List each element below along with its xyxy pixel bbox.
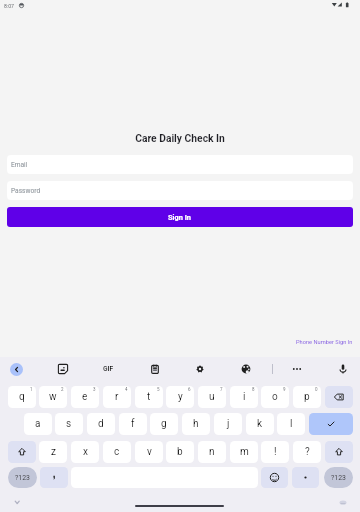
staticText: a <box>35 418 41 430</box>
staticText: v <box>147 446 152 458</box>
button[interactable]: ?123 <box>324 467 353 488</box>
button[interactable]: w <box>39 386 67 408</box>
staticText: ! <box>274 446 277 458</box>
button[interactable]: i <box>230 386 258 408</box>
staticText: k <box>257 418 263 430</box>
staticText: h <box>193 418 199 430</box>
button[interactable]: q <box>8 386 36 408</box>
staticText: 5 <box>157 387 160 392</box>
staticText: c <box>114 446 120 458</box>
staticText: 1 <box>30 387 33 392</box>
button[interactable]: Settings <box>192 361 208 377</box>
button[interactable]: p <box>293 386 321 408</box>
button[interactable]: n <box>198 441 226 463</box>
staticText: n <box>209 446 215 458</box>
staticText: d <box>98 418 104 430</box>
button[interactable]: Comma <box>40 467 68 488</box>
button[interactable]: Shift <box>8 441 36 463</box>
staticText: w <box>49 391 57 403</box>
button[interactable]: GIF <box>103 365 114 373</box>
staticText: 0 <box>315 387 318 392</box>
button[interactable]: x <box>71 441 99 463</box>
button[interactable]: c <box>103 441 131 463</box>
staticText: 3 <box>93 387 96 392</box>
staticText: j <box>227 418 230 430</box>
button[interactable]: m <box>230 441 258 463</box>
staticText: 6 <box>188 387 191 392</box>
button[interactable]: r <box>103 386 131 408</box>
button[interactable]: Hide keyboard <box>12 497 22 507</box>
staticText: ?123 <box>331 474 346 482</box>
button[interactable]: j <box>214 413 242 435</box>
button[interactable]: f <box>119 413 147 435</box>
button[interactable]: Voice input <box>335 361 351 377</box>
button[interactable]: Phone Number Sign In <box>251 339 353 346</box>
staticText: ? <box>305 446 310 458</box>
staticText: m <box>240 446 249 458</box>
staticText: e <box>82 391 88 403</box>
staticText: 2 <box>61 387 64 392</box>
button[interactable]: v <box>135 441 163 463</box>
staticText: t <box>147 391 151 403</box>
button[interactable]: Backspace <box>325 386 353 408</box>
button[interactable]: Password <box>7 181 353 200</box>
button[interactable]: z <box>39 441 67 463</box>
staticText: u <box>209 391 215 403</box>
button[interactable]: s <box>55 413 83 435</box>
staticText: Phone Number Sign In <box>296 339 353 346</box>
staticText: 4 <box>125 387 128 392</box>
staticText: b <box>177 446 183 458</box>
button[interactable]: ! <box>261 441 289 463</box>
button[interactable]: o <box>261 386 289 408</box>
staticText: o <box>272 391 278 403</box>
staticText: 9 <box>283 387 286 392</box>
staticText: 8:07 <box>4 3 15 9</box>
button[interactable]: b <box>166 441 194 463</box>
button[interactable]: More options <box>289 361 305 377</box>
staticText: f <box>131 418 135 430</box>
button[interactable]: Emoji <box>261 467 288 488</box>
staticText: GIF <box>103 365 114 373</box>
button[interactable]: y <box>166 386 194 408</box>
button[interactable]: e <box>71 386 99 408</box>
button[interactable]: Shift <box>325 441 353 463</box>
button[interactable]: Period <box>292 467 319 488</box>
staticText: z <box>51 446 56 458</box>
staticText: i <box>243 391 246 403</box>
button[interactable]: ?123 <box>8 467 37 488</box>
button[interactable]: Close toolbar <box>10 363 23 376</box>
button[interactable]: Themes <box>238 361 254 377</box>
button[interactable]: Clipboard <box>147 361 163 377</box>
staticText: Password <box>11 187 41 195</box>
staticText: Sign In <box>168 213 192 222</box>
button[interactable]: g <box>150 413 178 435</box>
button[interactable]: a <box>24 413 52 435</box>
button[interactable]: Sign In <box>7 207 353 227</box>
staticText: 8 <box>252 387 255 392</box>
staticText: s <box>66 418 72 430</box>
staticText: r <box>115 391 119 403</box>
staticText: q <box>19 391 25 403</box>
staticText: ?123 <box>15 474 30 482</box>
staticText: Email <box>11 161 28 169</box>
staticText: Care Daily Check In <box>0 132 360 144</box>
button[interactable]: ? <box>293 441 321 463</box>
button[interactable]: t <box>135 386 163 408</box>
staticText: y <box>178 391 183 403</box>
staticText: x <box>83 446 88 458</box>
button[interactable]: d <box>87 413 115 435</box>
button[interactable]: Enter <box>309 413 353 435</box>
staticText: l <box>290 418 293 430</box>
button[interactable]: Stickers <box>55 361 71 377</box>
staticText: g <box>161 418 167 430</box>
staticText: 7 <box>220 387 223 392</box>
button[interactable]: k <box>246 413 274 435</box>
button[interactable]: l <box>277 413 305 435</box>
button[interactable]: Email <box>7 155 353 174</box>
staticText: p <box>304 391 310 403</box>
button[interactable]: h <box>182 413 210 435</box>
button[interactable]: u <box>198 386 226 408</box>
